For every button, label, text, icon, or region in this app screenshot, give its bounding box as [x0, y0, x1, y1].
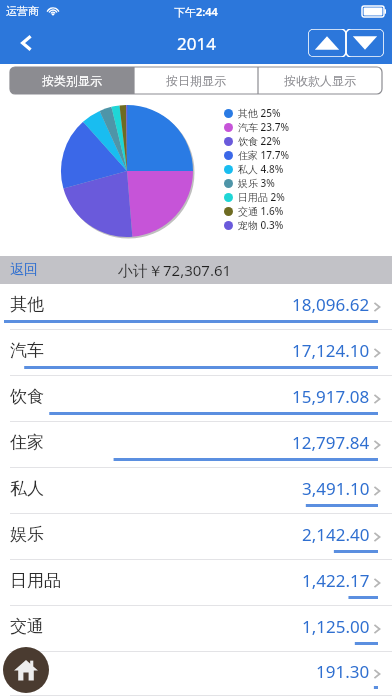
- staticText: 私人: [10, 478, 44, 499]
- staticText: 交通: [10, 616, 44, 637]
- staticText: 1,125.00: [302, 615, 370, 638]
- staticText: 宠物: [10, 661, 44, 682]
- staticText: 按日期显示: [166, 73, 226, 88]
- staticText: 小计￥72,307.61: [118, 260, 232, 280]
- button[interactable]: 宠物: [0, 652, 392, 696]
- button[interactable]: Home: [3, 647, 49, 693]
- staticText: 宠物 0.3%: [238, 218, 284, 232]
- staticText: 汽车: [10, 340, 44, 361]
- staticText: 住家 17.7%: [238, 148, 289, 162]
- staticText: 日用品 2%: [238, 190, 285, 204]
- staticText: 住家: [10, 432, 44, 453]
- staticText: 按类别显示: [42, 73, 102, 88]
- button[interactable]: Previous year: [308, 29, 346, 57]
- button[interactable]: 按收款人显示: [258, 67, 382, 94]
- button[interactable]: 日用品: [0, 560, 392, 606]
- button[interactable]: Next year: [346, 29, 384, 57]
- staticText: 运营商: [6, 4, 39, 18]
- staticText: 15,917.08: [292, 385, 370, 408]
- button[interactable]: 交通: [0, 606, 392, 652]
- staticText: 2014: [177, 32, 216, 55]
- staticText: 其他 25%: [238, 106, 281, 120]
- button[interactable]: 汽车: [0, 330, 392, 376]
- button[interactable]: 按类别显示: [10, 67, 134, 94]
- staticText: 2,142.40: [302, 523, 370, 546]
- staticText: 汽车 23.7%: [238, 120, 289, 134]
- staticText: 按收款人显示: [284, 73, 356, 88]
- button[interactable]: 住家: [0, 422, 392, 468]
- button[interactable]: 娱乐: [0, 514, 392, 560]
- staticText: 其他: [10, 294, 44, 315]
- staticText: 191.30: [316, 660, 370, 683]
- staticText: 18,096.62: [292, 293, 370, 316]
- staticText: 饮食 22%: [238, 134, 281, 148]
- staticText: 12,797.84: [292, 431, 370, 454]
- staticText: 日用品: [10, 570, 61, 591]
- staticText: 下午2:44: [174, 4, 218, 19]
- button[interactable]: 私人: [0, 468, 392, 514]
- staticText: 娱乐 3%: [238, 176, 275, 190]
- button[interactable]: Back: [0, 22, 54, 64]
- staticText: 3,491.10: [302, 477, 370, 500]
- button[interactable]: 返回: [10, 256, 38, 284]
- staticText: 1,422.17: [302, 569, 370, 592]
- button[interactable]: 按日期显示: [134, 67, 258, 94]
- button[interactable]: 饮食: [0, 376, 392, 422]
- staticText: 饮食: [10, 386, 44, 407]
- staticText: 娱乐: [10, 524, 44, 545]
- staticText: 返回: [10, 261, 38, 279]
- staticText: 私人 4.8%: [238, 162, 284, 176]
- staticText: 17,124.10: [292, 339, 370, 362]
- button[interactable]: 其他: [0, 284, 392, 330]
- staticText: 交通 1.6%: [238, 204, 284, 218]
